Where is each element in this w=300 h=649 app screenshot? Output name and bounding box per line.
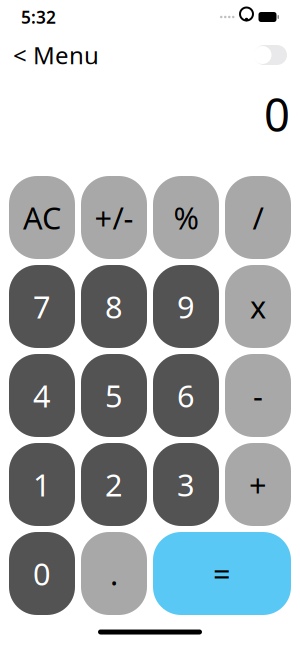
staticText: 3 [177,464,195,505]
staticText: 9 [177,286,195,327]
button[interactable]: 1 [9,443,75,526]
button[interactable]: < Menu [13,33,99,77]
button[interactable]: = [153,532,291,615]
button[interactable]: 9 [153,265,219,348]
button[interactable]: 6 [153,354,219,437]
button[interactable]: +/- [81,176,147,259]
staticText: 5 [105,375,123,416]
button[interactable]: / [225,176,291,259]
staticText: 2 [105,464,123,505]
staticText: = [213,553,231,594]
button[interactable]: 5 [81,354,147,437]
staticText: 1 [33,464,51,505]
button[interactable]: 4 [9,354,75,437]
staticText: 7 [33,286,51,327]
staticText: 0 [264,84,290,144]
button[interactable]: - [225,354,291,437]
button[interactable]: 7 [9,265,75,348]
staticText: AC [23,197,61,238]
staticText: 6 [177,375,195,416]
staticText: + [249,464,267,505]
staticText: x [250,286,266,327]
staticText: +/- [94,197,133,238]
staticText: - [253,375,263,416]
button[interactable]: Toggle [254,44,287,66]
button[interactable]: 2 [81,443,147,526]
staticText: % [173,197,198,238]
button[interactable]: AC [9,176,75,259]
button[interactable]: 3 [153,443,219,526]
staticText: 8 [105,286,123,327]
staticText: < Menu [13,39,99,71]
button[interactable]: + [225,443,291,526]
staticText: 4 [33,375,51,416]
button[interactable]: . [81,532,147,615]
button[interactable]: 8 [81,265,147,348]
button[interactable]: x [225,265,291,348]
staticText: . [110,553,118,594]
staticText: 5:32 [21,5,56,28]
button[interactable]: 0 [9,532,75,615]
staticText: / [252,197,263,238]
staticText: 0 [33,553,51,594]
button[interactable]: % [153,176,219,259]
